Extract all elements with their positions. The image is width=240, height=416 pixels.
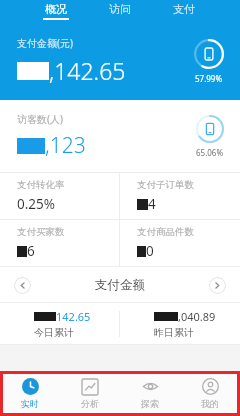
button[interactable]: 分析 (60, 371, 120, 416)
button[interactable]: 支付 (167, 2, 201, 20)
staticText: 支付金额 (95, 277, 145, 293)
button[interactable]: 访问 (103, 2, 137, 20)
staticText: 支付转化率 (17, 179, 65, 191)
staticText: 分析 (81, 398, 99, 409)
staticText: 57.99% (195, 73, 223, 84)
button[interactable]: 支付商品件数 (120, 220, 240, 266)
staticText: 概况 (45, 2, 67, 16)
staticText: ,123 (45, 131, 86, 160)
staticText: 探索 (141, 398, 159, 409)
staticText: 0.25% (17, 195, 56, 213)
button[interactable]: 概况 (39, 2, 73, 20)
button[interactable]: 探索 (120, 371, 180, 416)
staticText: 支付子订单数 (137, 179, 194, 191)
staticText: 支付 (173, 2, 195, 16)
button[interactable]: 支付子订单数 (120, 173, 240, 219)
button[interactable]: Previous metric (14, 277, 31, 294)
button[interactable]: 实时 (0, 371, 60, 416)
button[interactable]: 支付转化率 (0, 173, 119, 219)
staticText: 访客数(人) (17, 112, 63, 126)
button[interactable]: 支付买家数 (0, 220, 119, 266)
staticText: 6 (27, 242, 35, 260)
staticText: 昨日累计 (154, 326, 194, 339)
button[interactable]: 142.65 (0, 303, 119, 345)
staticText: 支付买家数 (17, 226, 65, 238)
staticText: 访问 (109, 2, 131, 16)
staticText: 65.06% (196, 147, 224, 158)
button[interactable]: 访客数(人) (0, 100, 240, 172)
staticText: 0 (146, 242, 154, 260)
staticText: 4 (148, 195, 156, 213)
staticText: 支付金额(元) (17, 36, 73, 50)
button[interactable]: ,040.89 (120, 303, 240, 345)
staticText: ,040.89 (178, 309, 216, 324)
staticText: 实时 (21, 398, 39, 409)
staticText: 我的 (201, 398, 219, 409)
staticText: 142.65 (56, 309, 91, 324)
staticText: 支付商品件数 (137, 226, 194, 238)
staticText: 今日累计 (34, 326, 74, 339)
button[interactable]: 支付金额(元) (0, 22, 240, 100)
staticText: ,142.65 (49, 55, 126, 86)
button[interactable]: 我的 (180, 371, 240, 416)
button[interactable]: Next metric (209, 277, 226, 294)
